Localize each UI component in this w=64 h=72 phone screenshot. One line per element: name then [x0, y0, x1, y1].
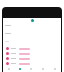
- button[interactable]: Groups: [25, 66, 37, 71]
- button[interactable]: [3, 46, 61, 51]
- button[interactable]: [3, 61, 61, 66]
- button[interactable]: Calls: [37, 66, 49, 71]
- button[interactable]: Chats: [14, 66, 25, 71]
- button[interactable]: App logo: [31, 19, 34, 22]
- button[interactable]: [3, 51, 61, 56]
- button[interactable]: Settings: [49, 66, 61, 71]
- button[interactable]: [3, 56, 61, 61]
- button[interactable]: Home: [3, 66, 14, 71]
